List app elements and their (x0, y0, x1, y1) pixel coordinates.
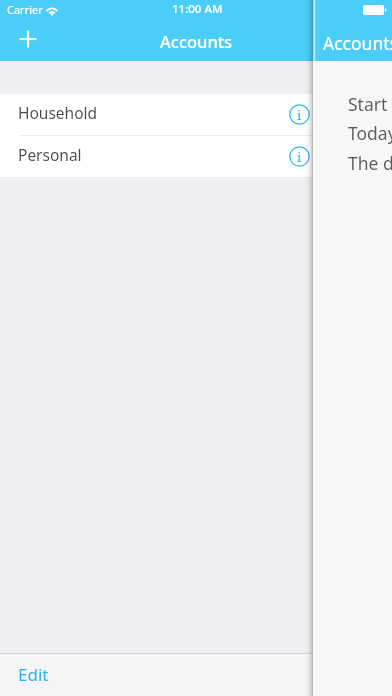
staticText: 11:00 AM (172, 1, 223, 17)
staticText: Personal (18, 144, 82, 165)
button[interactable]: Household (0, 94, 312, 135)
staticText: i (297, 148, 302, 166)
staticText: i (297, 106, 302, 124)
staticText: Accounts (160, 30, 233, 52)
button[interactable]: Edit (0, 654, 67, 695)
button[interactable]: More info (289, 104, 310, 125)
staticText: Start a new account to keep Today is the… (348, 92, 392, 175)
staticText: Edit (18, 663, 49, 686)
button[interactable]: More info (289, 146, 310, 167)
staticText: Carrier (7, 2, 43, 17)
staticText: Accounts (323, 31, 392, 55)
button[interactable]: Add account (13, 24, 43, 54)
button[interactable]: Personal (0, 136, 312, 177)
staticText: Household (18, 102, 98, 123)
